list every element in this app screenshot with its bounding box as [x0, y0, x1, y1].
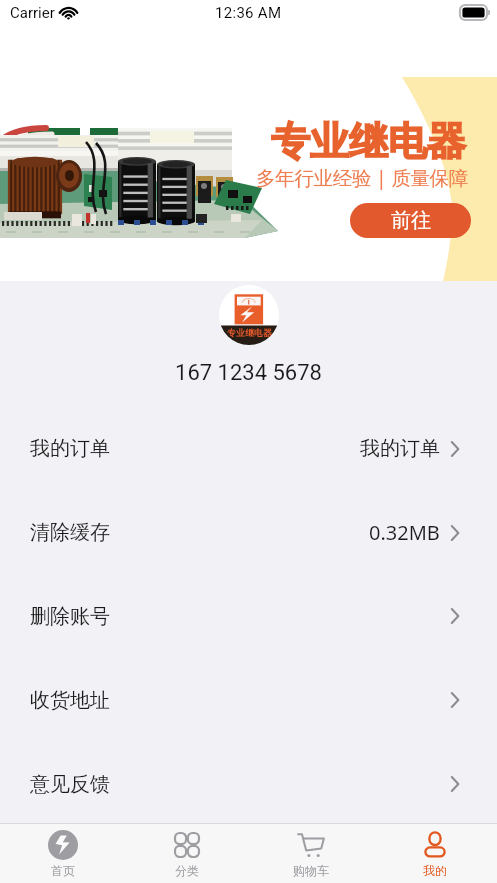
- button[interactable]: Profile avatar: [219, 285, 279, 345]
- button[interactable]: 首页: [0, 830, 125, 878]
- button[interactable]: 前往: [350, 203, 471, 238]
- staticText: 0.32MB: [369, 519, 440, 546]
- button[interactable]: 意见反馈: [0, 742, 497, 826]
- staticText: 多年行业经验 | 质量保障: [256, 164, 468, 191]
- button[interactable]: 购物车: [249, 830, 373, 878]
- staticText: 首页: [51, 863, 75, 878]
- button[interactable]: 删除账号: [0, 574, 497, 658]
- staticText: 我的订单: [30, 436, 110, 461]
- staticText: 删除账号: [30, 604, 110, 629]
- staticText: 购物车: [293, 863, 329, 878]
- button[interactable]: 我的: [373, 830, 497, 878]
- staticText: Carrier: [10, 4, 55, 22]
- button[interactable]: 清除缓存: [0, 490, 497, 574]
- button[interactable]: 收货地址: [0, 658, 497, 742]
- staticText: 清除缓存: [30, 520, 110, 545]
- staticText: 意见反馈: [30, 772, 110, 797]
- staticText: 分类: [175, 863, 199, 878]
- staticText: 专业继电器: [227, 327, 272, 338]
- staticText: 12:36 AM: [215, 4, 282, 22]
- staticText: 前往: [391, 208, 431, 233]
- button[interactable]: 分类: [125, 830, 249, 878]
- staticText: 167 1234 5678: [0, 360, 497, 386]
- staticText: 我的订单: [360, 436, 440, 461]
- staticText: 我的: [423, 863, 447, 878]
- staticText: 收货地址: [30, 688, 110, 713]
- button[interactable]: 我的订单: [0, 406, 497, 490]
- staticText: 专业继电器: [271, 117, 466, 166]
